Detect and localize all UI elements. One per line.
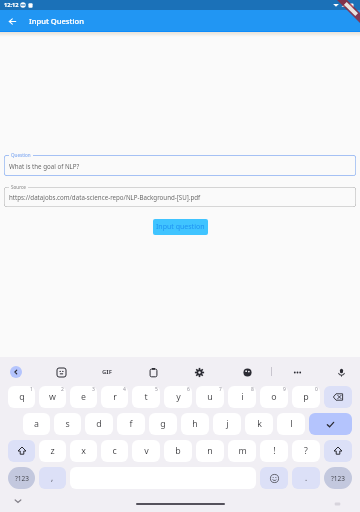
staticText: a [34, 418, 39, 430]
button[interactable]: v [132, 440, 160, 462]
button[interactable]: GIF [96, 361, 118, 383]
staticText: 8 [251, 386, 254, 393]
staticText: 3 [92, 386, 95, 393]
staticText: 0 [315, 386, 318, 393]
staticText: 6 [187, 386, 190, 393]
button[interactable]: y [164, 386, 192, 408]
staticText: , [51, 472, 54, 483]
button[interactable]: Back [10, 366, 22, 378]
button[interactable]: h [181, 413, 209, 435]
button[interactable]: ?123 [324, 467, 352, 489]
button[interactable]: o [260, 386, 288, 408]
staticText: 1 [30, 386, 33, 393]
button[interactable]: n [196, 440, 224, 462]
staticText: Question [11, 152, 31, 158]
staticText: What is the goal of NLP? [9, 162, 80, 170]
button[interactable]: https://datajobs.com/data-science-repo/N… [4, 187, 356, 207]
button[interactable]: ! [260, 440, 288, 462]
button[interactable]: s [54, 413, 81, 435]
staticText: r [113, 391, 117, 403]
staticText: 12:12 [4, 1, 19, 9]
staticText: . [305, 472, 308, 483]
button[interactable]: Themes [236, 361, 258, 383]
staticText: z [50, 445, 55, 457]
button[interactable]: q [8, 386, 35, 408]
staticText: w [49, 391, 56, 403]
staticText: b [175, 445, 181, 457]
staticText: u [207, 391, 213, 403]
button[interactable]: t [132, 386, 160, 408]
button[interactable]: d [85, 413, 113, 435]
staticText: Source [11, 184, 26, 190]
staticText: ? [304, 445, 308, 457]
button[interactable]: j [213, 413, 241, 435]
staticText: 2 [61, 386, 64, 393]
button[interactable]: Enter [309, 413, 352, 435]
button[interactable]: Back [0, 10, 24, 32]
staticText: k [257, 418, 262, 430]
staticText: ?123 [15, 474, 29, 483]
staticText: g [160, 418, 166, 430]
staticText: https://datajobs.com/data-science-repo/N… [9, 193, 201, 201]
button[interactable]: Emoji [260, 467, 288, 489]
staticText: c [112, 445, 117, 457]
button[interactable]: a [23, 413, 50, 435]
staticText: q [19, 391, 25, 403]
button[interactable]: k [245, 413, 273, 435]
button[interactable]: Shift [8, 440, 35, 462]
button[interactable]: ? [292, 440, 320, 462]
staticText: 7 [219, 386, 222, 393]
staticText: 5 [155, 386, 158, 393]
staticText: 4 [123, 386, 126, 393]
staticText: ! [273, 445, 276, 457]
staticText: Input question [156, 222, 205, 232]
button[interactable]: l [277, 413, 305, 435]
staticText: GIF [102, 368, 112, 376]
button[interactable]: p [292, 386, 320, 408]
button[interactable]: i [228, 386, 256, 408]
button[interactable]: . [292, 467, 320, 489]
staticText: l [290, 418, 293, 430]
staticText: 9 [283, 386, 286, 393]
staticText: x [81, 445, 86, 457]
button[interactable]: u [196, 386, 224, 408]
button[interactable]: What is the goal of NLP? [4, 155, 356, 176]
button[interactable]: b [164, 440, 192, 462]
staticText: v [144, 445, 149, 457]
button[interactable]: Settings [188, 361, 210, 383]
button[interactable]: w [39, 386, 66, 408]
staticText: e [81, 391, 86, 403]
button[interactable]: , [39, 467, 66, 489]
button[interactable]: Shift [324, 440, 352, 462]
staticText: o [271, 391, 277, 403]
staticText: t [144, 391, 148, 403]
button[interactable]: x [70, 440, 97, 462]
button[interactable]: Voice [330, 361, 352, 383]
staticText: s [65, 418, 70, 430]
button[interactable]: Clipboard [142, 361, 164, 383]
staticText: ?123 [331, 474, 345, 483]
button[interactable]: e [70, 386, 97, 408]
button[interactable]: Backspace [324, 386, 352, 408]
staticText: h [192, 418, 198, 430]
button[interactable]: c [101, 440, 128, 462]
button[interactable]: r [101, 386, 128, 408]
button[interactable]: m [228, 440, 256, 462]
button[interactable]: z [39, 440, 66, 462]
button[interactable]: g [149, 413, 177, 435]
button[interactable]: ?123 [8, 467, 35, 489]
button[interactable]: Sticker [50, 361, 72, 383]
staticText: y [176, 391, 181, 403]
staticText: f [129, 418, 133, 430]
button[interactable]: f [117, 413, 145, 435]
staticText: m [238, 445, 247, 457]
staticText: d [96, 418, 102, 430]
staticText: Input Question [29, 16, 84, 26]
button[interactable]: Input question [153, 219, 208, 235]
staticText: j [226, 418, 229, 430]
staticText: i [241, 391, 244, 403]
staticText: p [303, 391, 309, 403]
button[interactable]: More [286, 361, 308, 383]
staticText: n [207, 445, 213, 457]
